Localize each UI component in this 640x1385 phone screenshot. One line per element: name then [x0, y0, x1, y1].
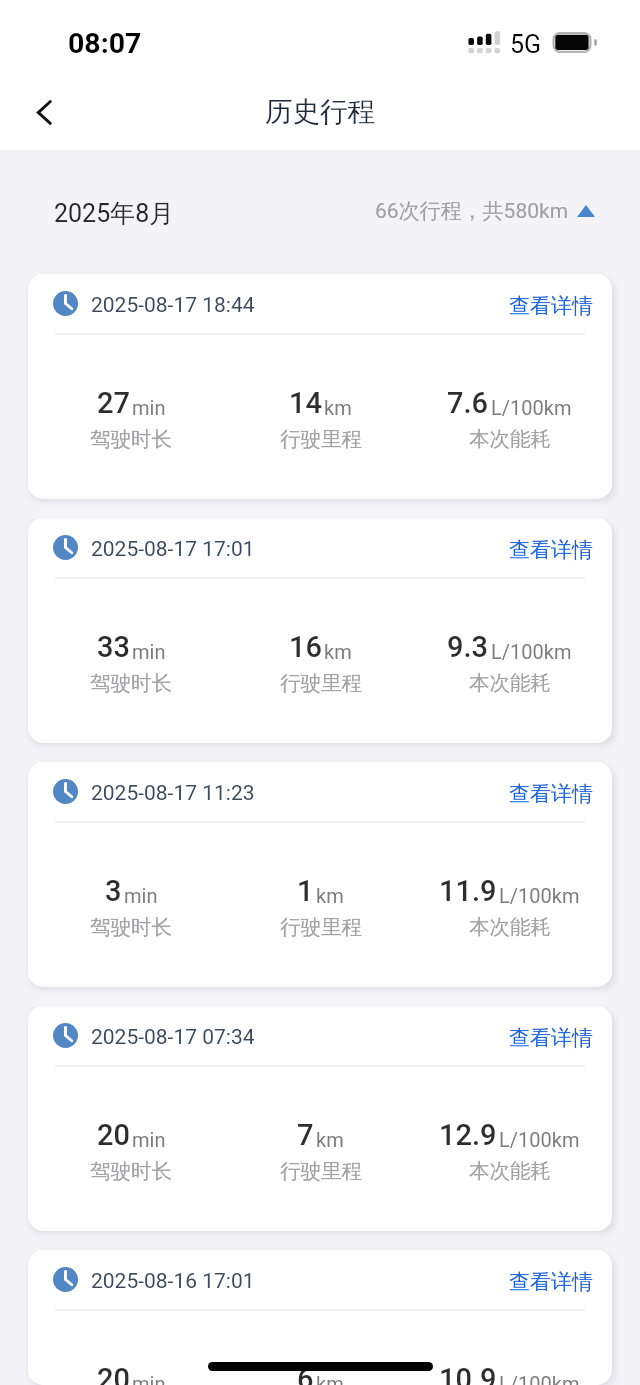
- staticText: 2025-08-17 07:34: [91, 1025, 255, 1050]
- staticText: 本次能耗: [469, 426, 551, 452]
- staticText: min: [132, 1128, 166, 1151]
- staticText: 7: [297, 1118, 314, 1152]
- staticText: L/100km: [499, 1128, 580, 1151]
- staticText: km: [316, 1372, 344, 1385]
- staticText: km: [324, 396, 352, 419]
- staticText: L/100km: [491, 396, 572, 419]
- staticText: km: [316, 1128, 344, 1151]
- staticText: min: [132, 396, 166, 419]
- button[interactable]: 查看详情: [505, 291, 597, 320]
- staticText: 20: [97, 1118, 130, 1152]
- staticText: 3: [105, 874, 122, 908]
- staticText: 5G: [510, 30, 542, 59]
- staticText: 08:07: [68, 27, 142, 60]
- staticText: L/100km: [499, 1372, 580, 1385]
- staticText: 查看详情: [509, 537, 593, 563]
- staticText: 查看详情: [509, 1025, 593, 1051]
- staticText: 16: [289, 630, 322, 664]
- staticText: 10.9: [439, 1362, 497, 1385]
- staticText: L/100km: [499, 884, 580, 907]
- button[interactable]: 查看详情: [505, 1023, 597, 1052]
- staticText: 本次能耗: [469, 670, 551, 696]
- staticText: 7.6: [447, 386, 489, 420]
- staticText: min: [132, 640, 166, 663]
- staticText: 行驶里程: [280, 914, 362, 940]
- staticText: L/100km: [491, 640, 572, 663]
- staticText: 2025-08-17 17:01: [91, 537, 255, 562]
- staticText: 14: [289, 386, 322, 420]
- staticText: km: [324, 640, 352, 663]
- button[interactable]: 2025-08-16 17:01: [28, 1250, 612, 1385]
- staticText: 本次能耗: [469, 1158, 551, 1184]
- staticText: 33: [97, 630, 130, 664]
- staticText: 11.9: [439, 874, 497, 908]
- staticText: 驾驶时长: [90, 670, 172, 696]
- staticText: 行驶里程: [280, 1158, 362, 1184]
- staticText: 2025-08-17 11:23: [91, 781, 255, 806]
- button[interactable]: 2025-08-17 11:23: [28, 762, 612, 987]
- staticText: 行驶里程: [280, 426, 362, 452]
- button[interactable]: Back: [18, 85, 70, 137]
- staticText: 2025-08-16 17:01: [91, 1269, 255, 1294]
- staticText: 驾驶时长: [90, 914, 172, 940]
- button[interactable]: 查看详情: [505, 779, 597, 808]
- staticText: 12.9: [439, 1118, 497, 1152]
- staticText: 历史行程: [265, 95, 375, 130]
- button[interactable]: 查看详情: [505, 535, 597, 564]
- staticText: min: [124, 884, 158, 907]
- staticText: min: [132, 1372, 166, 1385]
- staticText: 66次行程，共580km: [375, 198, 569, 224]
- staticText: 1: [297, 874, 314, 908]
- button[interactable]: 2025-08-17 07:34: [28, 1006, 612, 1231]
- staticText: 查看详情: [509, 1269, 593, 1295]
- staticText: 行驶里程: [280, 670, 362, 696]
- staticText: 27: [97, 386, 130, 420]
- button[interactable]: 2025-08-17 17:01: [28, 518, 612, 743]
- staticText: 查看详情: [509, 781, 593, 807]
- button[interactable]: 2025-08-17 18:44: [28, 274, 612, 499]
- staticText: 2025-08-17 18:44: [91, 293, 255, 318]
- staticText: 20: [97, 1362, 130, 1385]
- staticText: 6: [297, 1362, 314, 1385]
- staticText: 驾驶时长: [90, 426, 172, 452]
- staticText: 9.3: [447, 630, 489, 664]
- staticText: 查看详情: [509, 293, 593, 319]
- button[interactable]: 66次行程，共580km: [375, 198, 595, 224]
- staticText: 本次能耗: [469, 914, 551, 940]
- staticText: 驾驶时长: [90, 1158, 172, 1184]
- staticText: km: [316, 884, 344, 907]
- button[interactable]: 查看详情: [505, 1267, 597, 1296]
- staticText: 2025年8月: [54, 198, 175, 229]
